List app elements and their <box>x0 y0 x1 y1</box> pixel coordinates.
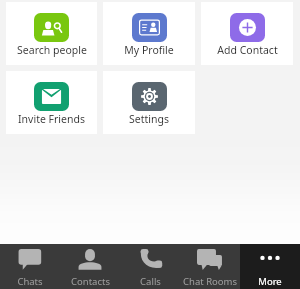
staticText: Invite Friends <box>18 112 85 126</box>
staticText: Calls <box>140 275 161 288</box>
button[interactable]: More <box>240 244 300 289</box>
other: Chats <box>17 248 43 270</box>
button[interactable]: Chats <box>0 244 60 289</box>
button[interactable]: Chat Rooms <box>180 244 240 289</box>
staticText: Chat Rooms <box>183 275 237 288</box>
staticText: Add Contact <box>217 43 278 57</box>
button[interactable]: Invite Friends <box>6 71 97 134</box>
staticText: Contacts <box>71 275 110 288</box>
other: Calls <box>137 248 163 270</box>
button[interactable]: Calls <box>120 244 180 289</box>
button[interactable]: Contacts <box>60 244 120 289</box>
button[interactable]: Settings <box>103 71 195 134</box>
staticText: More <box>258 275 282 288</box>
button[interactable]: Search people <box>6 2 97 65</box>
other: Chat Rooms <box>197 248 223 270</box>
other: Contacts <box>77 248 103 270</box>
staticText: My Profile <box>124 43 174 57</box>
other: More <box>257 248 283 270</box>
staticText: Search people <box>17 43 87 57</box>
button[interactable]: Add Contact <box>201 2 293 65</box>
staticText: Settings <box>129 112 169 126</box>
staticText: Chats <box>17 275 43 288</box>
button[interactable]: My Profile <box>103 2 195 65</box>
